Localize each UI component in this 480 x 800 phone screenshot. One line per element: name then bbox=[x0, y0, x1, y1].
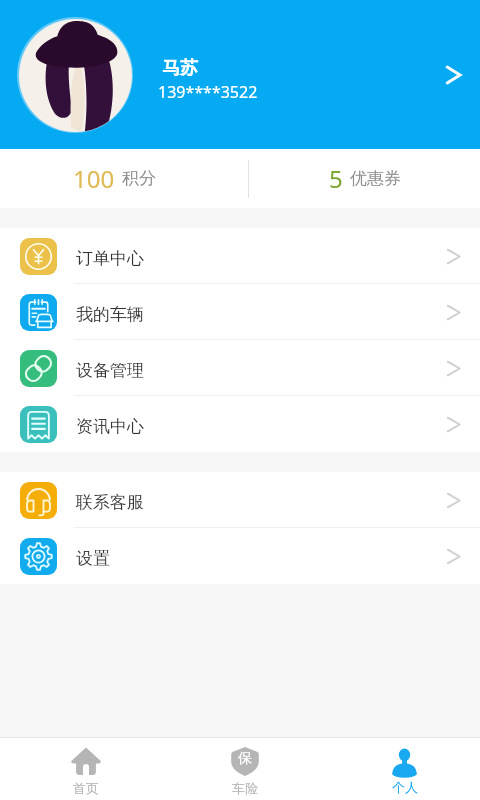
staticText: 积分 bbox=[122, 168, 156, 189]
button[interactable]: 设置 bbox=[0, 528, 480, 584]
staticText: 我的车辆 bbox=[76, 304, 444, 325]
button[interactable]: Profile: 马苏 139****3522 bbox=[0, 0, 480, 149]
button[interactable]: 设备管理 bbox=[0, 340, 480, 396]
staticText: 个人 bbox=[392, 779, 418, 795]
button[interactable]: 保 bbox=[160, 738, 320, 800]
staticText: 资讯中心 bbox=[76, 416, 444, 437]
staticText: 设置 bbox=[76, 548, 444, 569]
button[interactable]: 首页 bbox=[0, 738, 160, 800]
button[interactable]: 5 bbox=[248, 149, 480, 208]
button[interactable]: 订单中心 bbox=[0, 228, 480, 284]
button[interactable]: 联系客服 bbox=[0, 472, 480, 528]
staticText: 设备管理 bbox=[76, 360, 444, 381]
staticText: 100 bbox=[73, 162, 115, 195]
button[interactable]: 我的车辆 bbox=[0, 284, 480, 340]
staticText: 马苏 bbox=[162, 57, 198, 80]
staticText: 139****3522 bbox=[158, 81, 258, 103]
button[interactable]: 100 bbox=[0, 149, 248, 208]
staticText: 车险 bbox=[232, 780, 258, 796]
button[interactable]: 资讯中心 bbox=[0, 396, 480, 452]
staticText: 保 bbox=[238, 750, 252, 768]
staticText: 订单中心 bbox=[76, 248, 444, 269]
staticText: 联系客服 bbox=[76, 492, 444, 513]
staticText: 首页 bbox=[73, 780, 99, 796]
staticText: 5 bbox=[329, 162, 343, 195]
button[interactable]: 个人 bbox=[320, 738, 480, 800]
staticText: 优惠券 bbox=[350, 168, 401, 189]
